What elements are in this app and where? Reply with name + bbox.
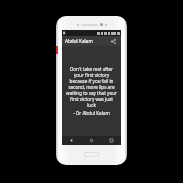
staticText: Don't take rest after your first victory… [66,66,117,108]
button[interactable]: Back [62,136,81,145]
button[interactable]: Recent apps [101,136,121,145]
staticText: Abdul Kalam Quotes in English [65,38,109,44]
button[interactable]: Home [81,136,101,145]
button[interactable]: Share [109,37,118,46]
staticText: - Dr Abdul Kalam [73,110,110,116]
